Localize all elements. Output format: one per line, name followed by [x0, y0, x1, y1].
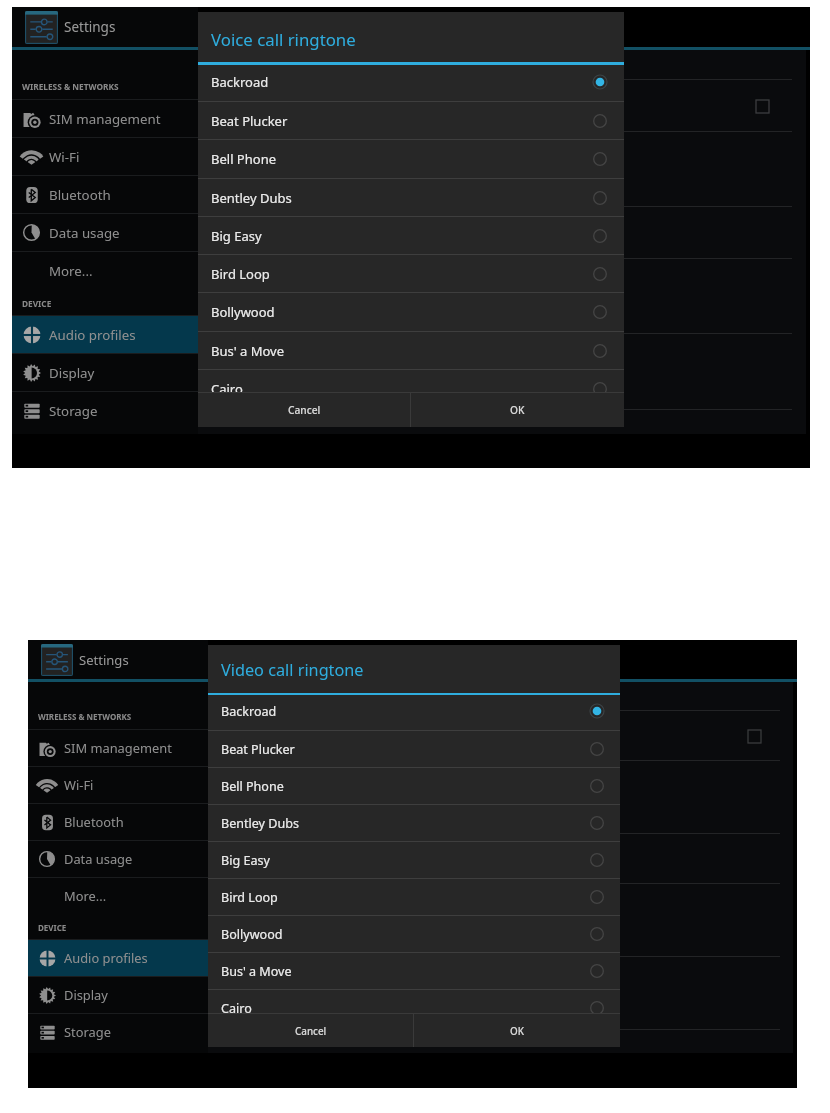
staticText: Bell Phone [211, 150, 277, 168]
button[interactable]: Data usage [28, 841, 208, 877]
button[interactable]: Backroad [208, 695, 620, 729]
button[interactable]: OK [411, 393, 624, 427]
staticText: More... [64, 887, 107, 905]
staticText: WIRELESS & NETWORKS [38, 711, 132, 722]
button[interactable]: Bell Phone [198, 140, 624, 177]
staticText: Settings [64, 18, 116, 36]
button[interactable]: SIM management [28, 730, 208, 766]
button[interactable]: Wi-Fi [28, 767, 208, 803]
button[interactable]: Audio profiles [12, 316, 198, 353]
staticText: Data usage [49, 224, 120, 242]
staticText: Storage [64, 1023, 111, 1041]
button[interactable]: More... [12, 252, 198, 289]
button[interactable]: Wi-Fi [12, 138, 198, 175]
button[interactable]: Big Easy [208, 842, 620, 878]
staticText: WIRELESS & NETWORKS [22, 81, 119, 92]
staticText: Voice call ringtone [211, 28, 356, 51]
button[interactable]: Cairo [208, 990, 620, 1013]
staticText: More... [49, 262, 93, 280]
staticText: Bus' a Move [211, 342, 285, 360]
staticText: OK [510, 403, 525, 417]
staticText: SIM management [64, 739, 172, 757]
button[interactable]: Bollywood [208, 916, 620, 952]
staticText: Display [64, 986, 108, 1004]
staticText: Storage [49, 402, 98, 420]
button[interactable]: Bird Loop [208, 879, 620, 915]
button[interactable]: Bollywood [198, 293, 624, 330]
button[interactable]: OK [414, 1014, 620, 1047]
staticText: Bollywood [221, 926, 283, 943]
staticText: DEVICE [22, 298, 52, 309]
staticText: OK [510, 1024, 524, 1037]
button[interactable]: Bentley Dubs [198, 179, 624, 216]
staticText: Bird Loop [211, 265, 270, 283]
button[interactable]: Storage [12, 392, 198, 429]
staticText: Audio profiles [64, 949, 148, 967]
button[interactable]: Display [28, 977, 208, 1013]
staticText: Bird Loop [221, 889, 278, 906]
button[interactable]: Big Easy [198, 217, 624, 254]
staticText: Display [49, 364, 95, 382]
staticText: Cancel [288, 403, 321, 417]
button[interactable]: Bird Loop [198, 255, 624, 292]
staticText: Wi-Fi [64, 776, 94, 794]
button[interactable]: Display [12, 354, 198, 391]
button[interactable]: Audio profiles [28, 940, 208, 976]
button[interactable]: Bluetooth [28, 804, 208, 840]
button[interactable]: Checkbox [756, 100, 769, 113]
staticText: Bentley Dubs [211, 189, 292, 207]
staticText: Audio profiles [49, 326, 136, 344]
button[interactable]: Bentley Dubs [208, 805, 620, 841]
staticText: Bentley Dubs [221, 815, 299, 832]
button[interactable]: Beat Plucker [208, 731, 620, 767]
staticText: Big Easy [221, 852, 270, 869]
button[interactable]: Bluetooth [12, 176, 198, 213]
staticText: Bluetooth [49, 186, 111, 204]
button[interactable]: Beat Plucker [198, 102, 624, 139]
staticText: SIM management [49, 110, 161, 128]
button[interactable]: Bell Phone [208, 768, 620, 804]
staticText: Cairo [221, 1000, 252, 1013]
staticText: Bus' a Move [221, 963, 292, 980]
button[interactable]: Backroad [198, 65, 624, 100]
staticText: Backroad [221, 703, 277, 720]
staticText: Settings [79, 651, 129, 669]
staticText: Big Easy [211, 227, 262, 245]
staticText: Beat Plucker [211, 112, 288, 130]
staticText: Video call ringtone [221, 659, 364, 681]
button[interactable]: Settings [28, 640, 208, 679]
button[interactable]: More... [28, 878, 208, 914]
button[interactable]: Bus' a Move [198, 332, 624, 369]
button[interactable]: Settings [12, 7, 198, 47]
staticText: Cairo [211, 380, 243, 392]
staticText: Backroad [211, 73, 269, 91]
staticText: Bell Phone [221, 778, 284, 795]
button[interactable]: Storage [28, 1014, 208, 1050]
staticText: Data usage [64, 850, 133, 868]
staticText: Wi-Fi [49, 148, 80, 166]
staticText: Bollywood [211, 303, 275, 321]
button[interactable]: Cancel [198, 393, 410, 427]
staticText: Cancel [295, 1024, 327, 1037]
button[interactable]: Data usage [12, 214, 198, 251]
button[interactable]: Cancel [208, 1014, 413, 1047]
staticText: Beat Plucker [221, 741, 295, 758]
staticText: DEVICE [38, 922, 67, 933]
button[interactable]: Checkbox [748, 730, 761, 743]
button[interactable]: SIM management [12, 100, 198, 137]
button[interactable]: Cairo [198, 370, 624, 392]
staticText: Bluetooth [64, 813, 124, 831]
button[interactable]: Bus' a Move [208, 953, 620, 989]
